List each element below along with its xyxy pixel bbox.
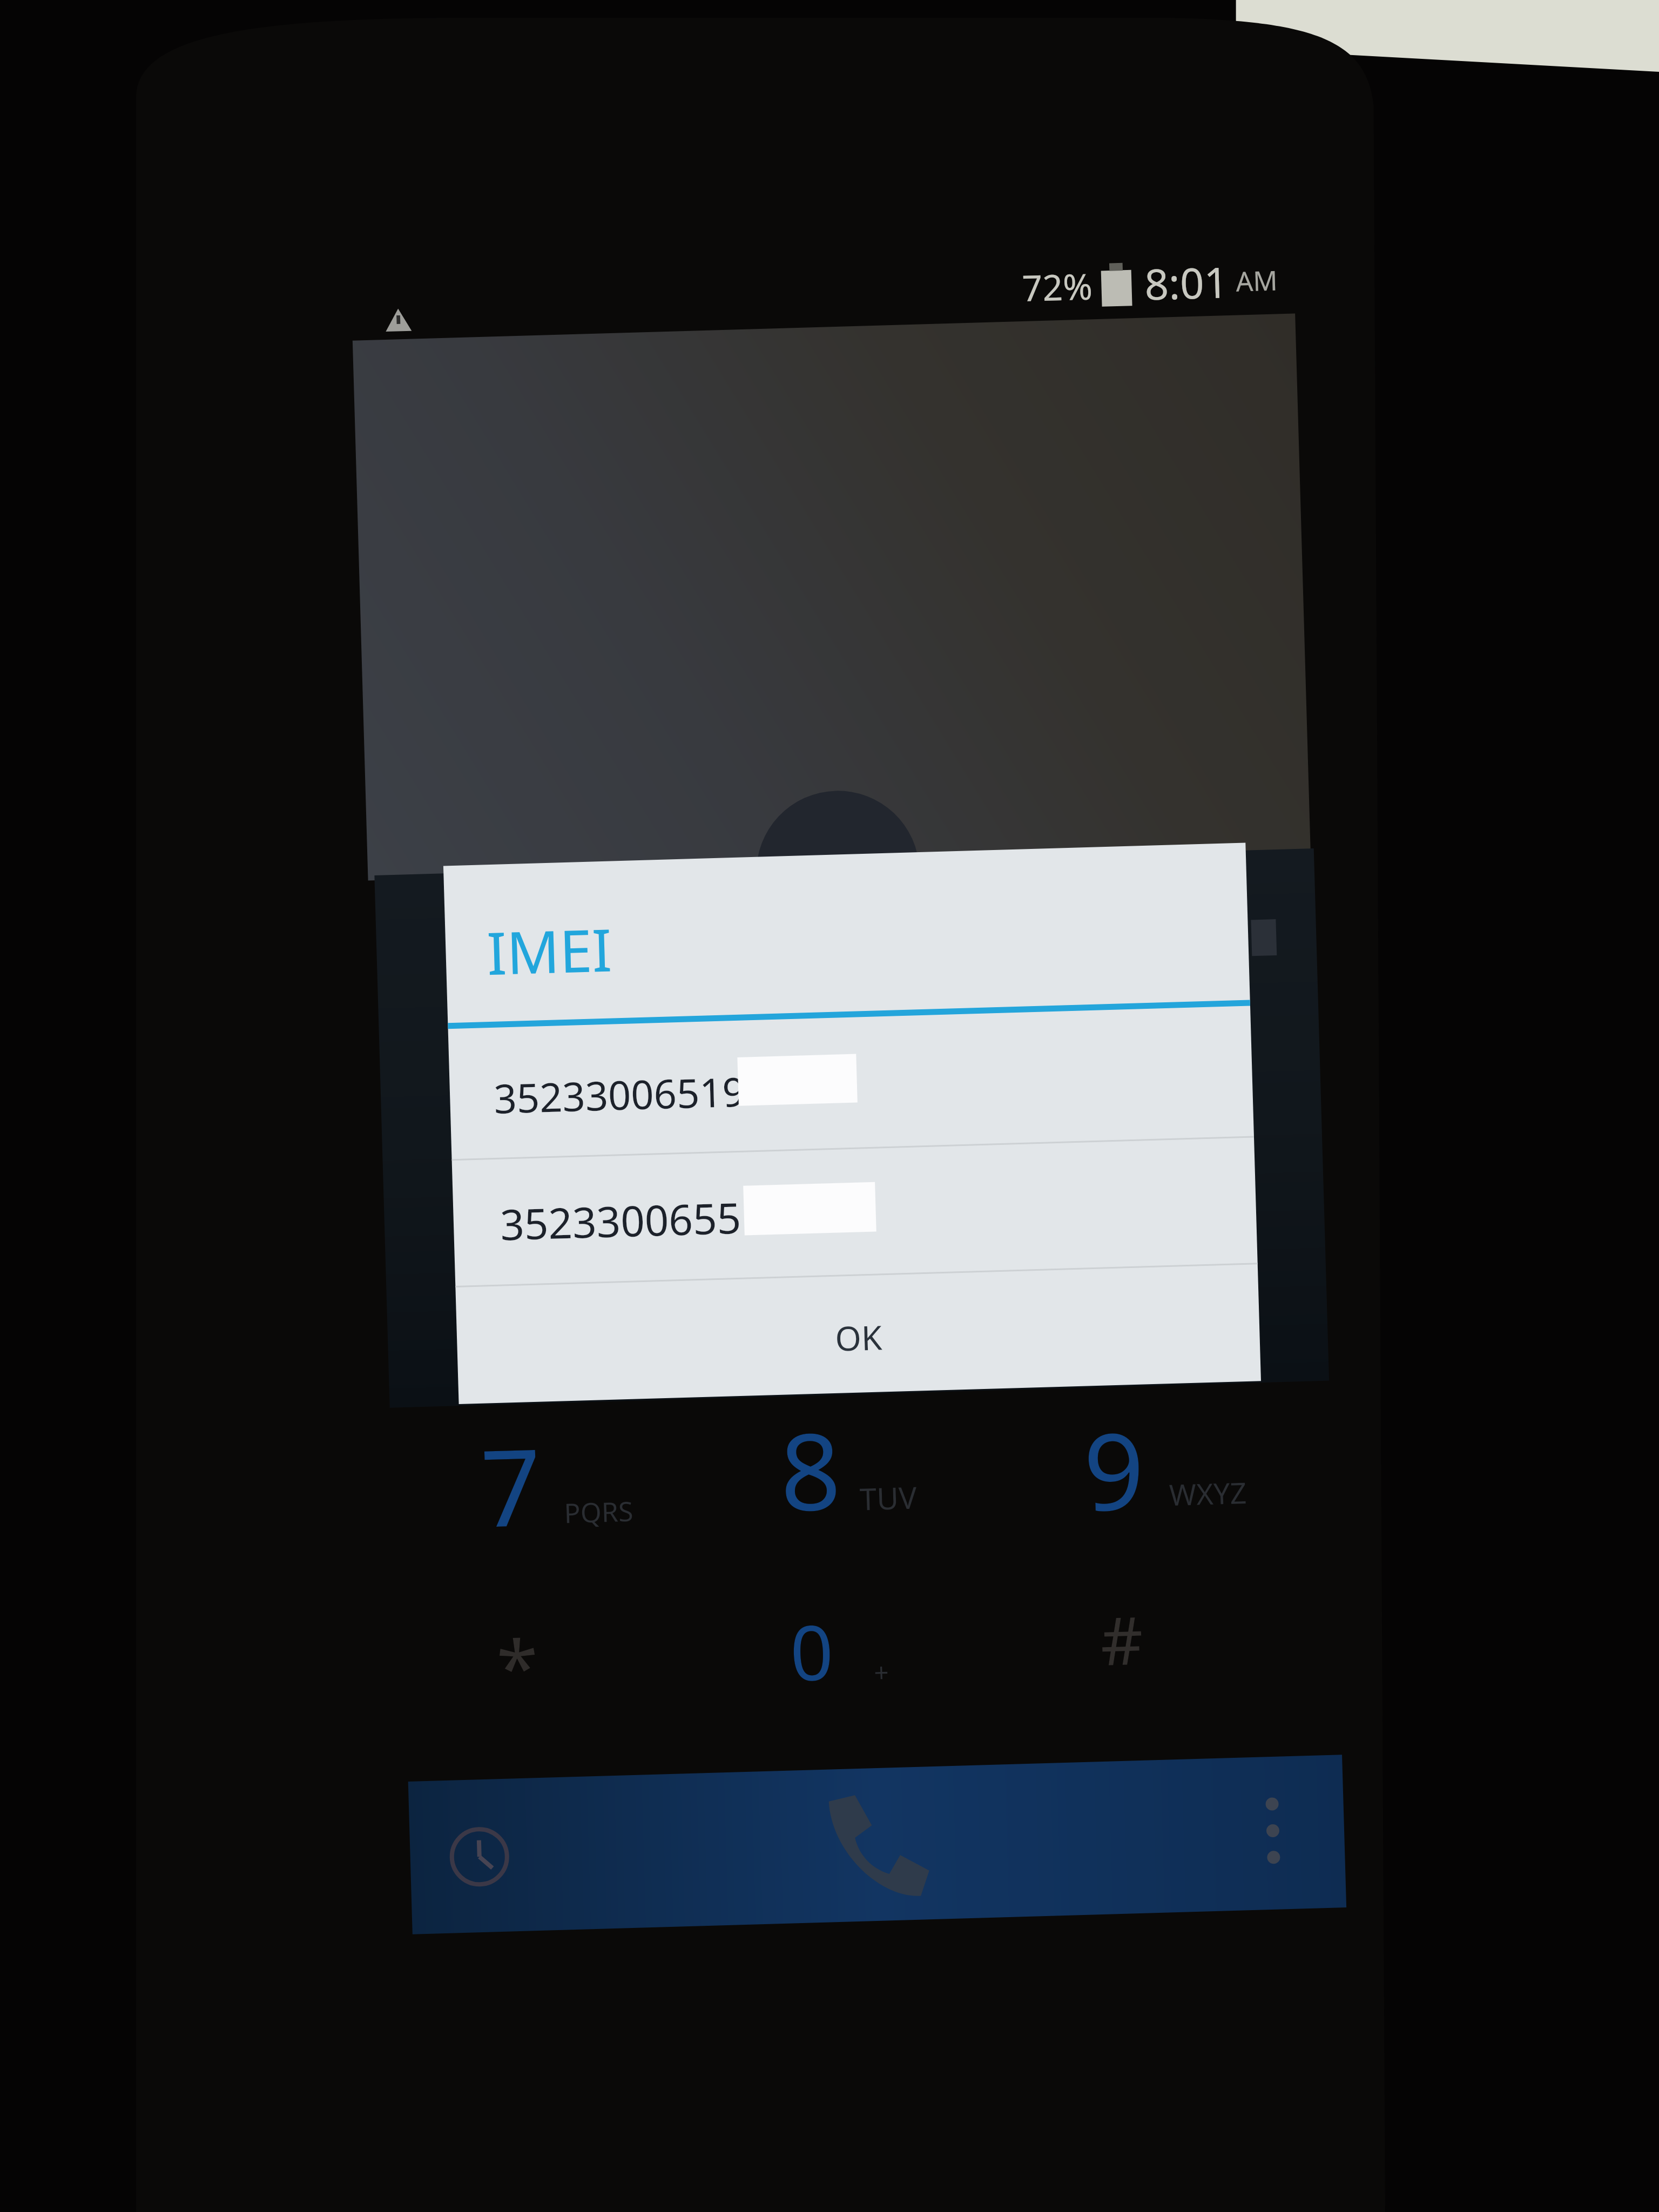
button[interactable]: More options [1262, 1795, 1284, 1866]
button[interactable]: 7 [440, 1374, 745, 1561]
staticText: PQRS [564, 1493, 634, 1531]
button[interactable]: 8 [739, 1358, 1044, 1544]
button[interactable]: Recent calls [448, 1826, 511, 1888]
staticText: OK [834, 1314, 883, 1361]
button[interactable]: 35233006519 [448, 1006, 1254, 1159]
staticText: 8:01 [1144, 253, 1229, 312]
button[interactable]: # [1060, 1555, 1366, 1742]
staticText: 8 [778, 1396, 843, 1542]
staticText: 7 [479, 1412, 544, 1558]
staticText: 9 [1082, 1396, 1147, 1542]
staticText: 72% [1021, 261, 1093, 312]
button[interactable]: 3523300655 [452, 1138, 1258, 1286]
button[interactable]: OK [455, 1264, 1261, 1404]
staticText: 35233006519 [493, 1064, 746, 1125]
button[interactable]: 9 [1043, 1358, 1348, 1544]
staticText: AM [1235, 262, 1278, 300]
staticText: # [1099, 1594, 1144, 1685]
button[interactable]: * [456, 1575, 762, 1762]
staticText: WXYZ [1169, 1472, 1247, 1514]
button[interactable]: 0 [750, 1560, 1055, 1747]
staticText: + [873, 1654, 890, 1690]
staticText: 3523300655 [499, 1189, 742, 1253]
button[interactable]: Call [814, 1791, 931, 1903]
staticText: IMEI [486, 909, 613, 992]
staticText: TUV [859, 1476, 918, 1519]
staticText: 0 [789, 1599, 835, 1703]
staticText: * [495, 1614, 540, 1718]
